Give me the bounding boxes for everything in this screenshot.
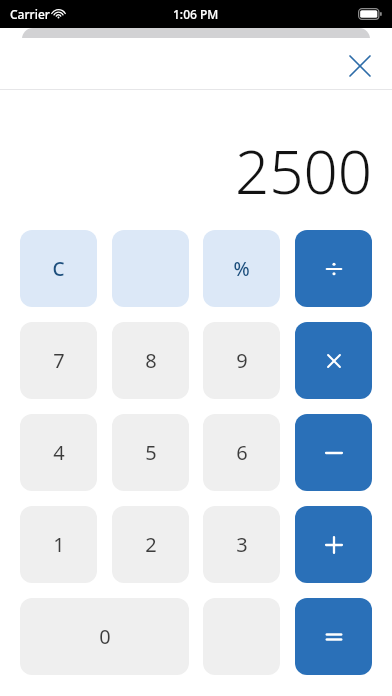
staticText: 0 bbox=[99, 623, 111, 650]
staticText: C bbox=[52, 256, 65, 282]
staticText: 6 bbox=[236, 439, 248, 466]
button[interactable]: 7 bbox=[20, 322, 97, 399]
staticText: 3 bbox=[236, 531, 248, 558]
staticText: 7 bbox=[53, 347, 65, 374]
staticText: 4 bbox=[53, 439, 65, 466]
staticText: 1:06 PM bbox=[173, 6, 219, 22]
button[interactable]: 4 bbox=[20, 414, 97, 491]
staticText: 8 bbox=[145, 347, 157, 374]
staticText: 1 bbox=[53, 531, 65, 558]
button[interactable]: Close bbox=[338, 44, 382, 88]
button[interactable]: 6 bbox=[203, 414, 280, 491]
button[interactable]: Minus bbox=[295, 414, 372, 491]
button[interactable]: 3 bbox=[203, 506, 280, 583]
button[interactable]: 1 bbox=[20, 506, 97, 583]
button[interactable]: Divide bbox=[295, 230, 372, 307]
button[interactable]: % bbox=[203, 230, 280, 307]
staticText: 5 bbox=[145, 439, 157, 466]
button[interactable]: 9 bbox=[203, 322, 280, 399]
staticText: 2 bbox=[145, 531, 157, 558]
button[interactable]: Plus bbox=[295, 506, 372, 583]
staticText: 9 bbox=[236, 347, 248, 374]
button[interactable]: C bbox=[20, 230, 97, 307]
staticText: 2500 bbox=[234, 130, 372, 210]
staticText: % bbox=[233, 256, 250, 282]
button[interactable]: 2 bbox=[112, 506, 189, 583]
button[interactable]: Equals bbox=[295, 598, 372, 675]
button[interactable]: Multiply bbox=[295, 322, 372, 399]
staticText: Carrier bbox=[10, 6, 50, 22]
button[interactable]: Plus or minus bbox=[112, 230, 189, 307]
button[interactable]: 5 bbox=[112, 414, 189, 491]
button[interactable]: 0 bbox=[20, 598, 189, 675]
button[interactable]: 8 bbox=[112, 322, 189, 399]
